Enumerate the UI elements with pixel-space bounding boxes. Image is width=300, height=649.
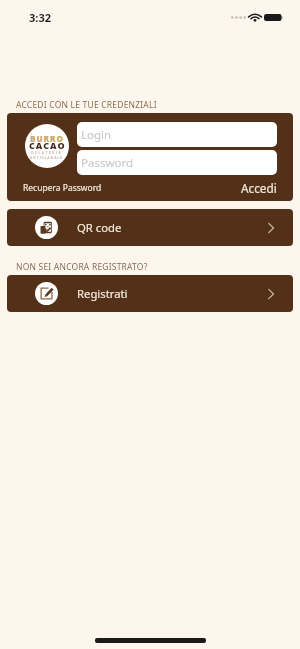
button[interactable]: Login	[77, 122, 277, 147]
button[interactable]: Recupera Password	[23, 182, 102, 194]
other: QR code	[35, 216, 58, 239]
staticText: Registrati	[77, 286, 128, 301]
staticText: CACAO	[29, 139, 66, 151]
button[interactable]: Registrati	[7, 275, 293, 312]
staticText: BURRO	[30, 133, 65, 144]
staticText: ACCEDI CON LE TUE CREDENZIALI	[16, 99, 157, 111]
staticText: Login	[81, 127, 112, 143]
button[interactable]: Accedi	[241, 180, 277, 196]
staticText: QR code	[77, 220, 122, 235]
staticText: ARTIGIANALE	[30, 155, 64, 160]
staticText: NON SEI ANCORA REGISTRATO?	[16, 261, 148, 273]
button[interactable]: QR code	[7, 209, 293, 246]
staticText: Password	[81, 155, 134, 171]
button[interactable]: Password	[77, 150, 277, 175]
staticText: GELATERIA	[31, 150, 63, 155]
other: Registrati	[35, 282, 58, 305]
staticText: 3:32	[29, 10, 51, 25]
